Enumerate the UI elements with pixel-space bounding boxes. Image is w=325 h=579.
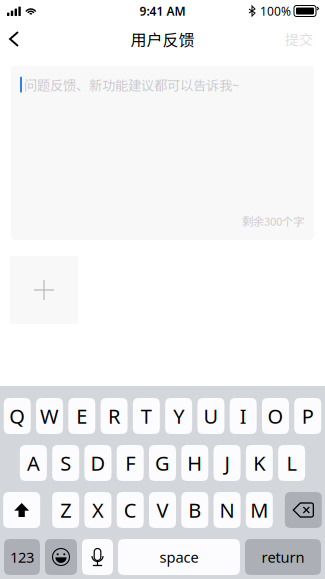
staticText: I <box>240 403 247 429</box>
button[interactable]: B <box>181 492 208 528</box>
staticText: A <box>27 450 40 476</box>
staticText: C <box>124 497 137 523</box>
staticText: L <box>287 450 297 476</box>
staticText: M <box>250 497 268 523</box>
button[interactable]: W <box>36 398 63 434</box>
staticText: N <box>220 497 235 523</box>
staticText: Y <box>173 403 184 429</box>
staticText: Z <box>60 497 71 523</box>
button[interactable]: space <box>118 539 240 575</box>
staticText: F <box>125 450 135 476</box>
staticText: 剩余300个字 <box>242 213 304 229</box>
button[interactable]: H <box>181 445 208 481</box>
staticText: W <box>40 403 59 429</box>
staticText: space <box>159 547 198 567</box>
button[interactable]: Add photo <box>10 256 78 324</box>
button[interactable]: M <box>246 492 273 528</box>
button[interactable]: U <box>197 398 224 434</box>
staticText: B <box>188 497 201 523</box>
button[interactable]: I <box>230 398 257 434</box>
button[interactable]: 123 <box>4 539 40 575</box>
staticText: 问题反馈、新功能建议都可以告诉我~ <box>24 75 239 94</box>
staticText: S <box>60 450 71 476</box>
button[interactable]: return <box>245 539 321 575</box>
staticText: 9:41 AM <box>139 3 185 19</box>
staticText: 用户反馈 <box>130 27 194 51</box>
button[interactable]: R <box>101 398 128 434</box>
staticText: G <box>155 450 170 476</box>
staticText: U <box>203 403 218 429</box>
button[interactable]: V <box>149 492 176 528</box>
button[interactable]: G <box>149 445 176 481</box>
staticText: D <box>90 450 105 476</box>
staticText: P <box>302 403 314 429</box>
button[interactable]: E <box>68 398 95 434</box>
staticText: V <box>156 497 168 523</box>
button[interactable]: S <box>52 445 79 481</box>
button[interactable]: Delete <box>285 492 322 528</box>
button[interactable]: Y <box>165 398 192 434</box>
button[interactable]: Emoji <box>45 539 77 575</box>
button[interactable]: L <box>278 445 305 481</box>
staticText: R <box>108 403 120 429</box>
staticText: H <box>187 450 202 476</box>
staticText: 提交 <box>285 29 313 49</box>
staticText: J <box>225 450 230 476</box>
staticText: T <box>141 403 152 429</box>
button[interactable]: Z <box>52 492 79 528</box>
button[interactable]: O <box>262 398 289 434</box>
button[interactable]: F <box>117 445 144 481</box>
button[interactable]: N <box>214 492 241 528</box>
button[interactable]: 提交 <box>271 22 325 56</box>
button[interactable]: C <box>117 492 144 528</box>
button[interactable]: K <box>246 445 273 481</box>
button[interactable]: Dictate <box>82 539 113 575</box>
staticText: Q <box>9 403 25 429</box>
button[interactable]: Back <box>0 22 38 56</box>
button[interactable]: T <box>133 398 160 434</box>
button[interactable]: Shift <box>3 492 40 528</box>
staticText: X <box>92 497 104 523</box>
button[interactable]: P <box>294 398 321 434</box>
button[interactable]: A <box>20 445 47 481</box>
button[interactable]: X <box>84 492 111 528</box>
staticText: 123 <box>10 547 34 567</box>
staticText: O <box>267 403 283 429</box>
staticText: return <box>261 547 304 567</box>
button[interactable]: Q <box>4 398 31 434</box>
staticText: K <box>253 450 265 476</box>
staticText: E <box>76 403 87 429</box>
staticText: 100% <box>260 3 291 19</box>
button[interactable]: D <box>84 445 111 481</box>
button[interactable]: J <box>214 445 241 481</box>
